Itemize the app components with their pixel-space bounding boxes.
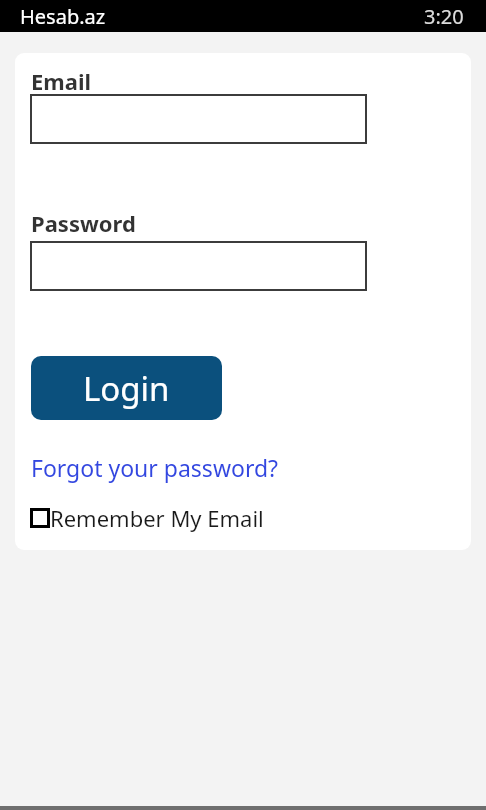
staticText: Hesab.az [20, 3, 106, 30]
button[interactable] [30, 241, 367, 291]
staticText: Password [31, 208, 136, 238]
staticText: Remember My Email [50, 503, 264, 533]
button[interactable] [30, 94, 367, 144]
staticText: 3:20 [424, 3, 464, 30]
staticText: Email [31, 66, 92, 96]
button[interactable]: Remember My Email [30, 503, 264, 533]
staticText: Login [83, 366, 170, 411]
button[interactable]: Login [31, 356, 222, 420]
button[interactable]: Forgot your password? [31, 452, 279, 483]
